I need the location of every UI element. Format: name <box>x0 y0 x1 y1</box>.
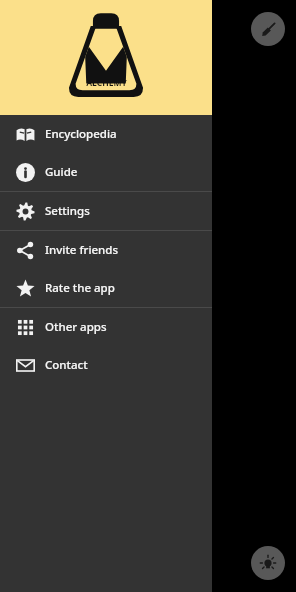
staticText: Guide <box>45 164 78 180</box>
staticText: Settings <box>45 203 90 219</box>
staticText: Contact <box>45 357 88 373</box>
staticText: Rate the app <box>45 280 115 296</box>
button[interactable]: Settings <box>0 192 212 230</box>
button[interactable]: Invite friends <box>0 231 212 269</box>
button[interactable]: Theme <box>251 12 285 46</box>
staticText: Encyclopedia <box>45 126 117 142</box>
button[interactable]: Contact <box>0 346 212 384</box>
staticText: ALCHEMY <box>86 77 127 89</box>
button[interactable]: Encyclopedia <box>0 115 212 153</box>
staticText: Invite friends <box>45 242 119 258</box>
button[interactable]: Guide <box>0 153 212 191</box>
button[interactable]: Rate the app <box>0 269 212 307</box>
staticText: Other apps <box>45 319 107 335</box>
button[interactable]: Hint <box>251 546 285 580</box>
button[interactable]: Other apps <box>0 308 212 346</box>
